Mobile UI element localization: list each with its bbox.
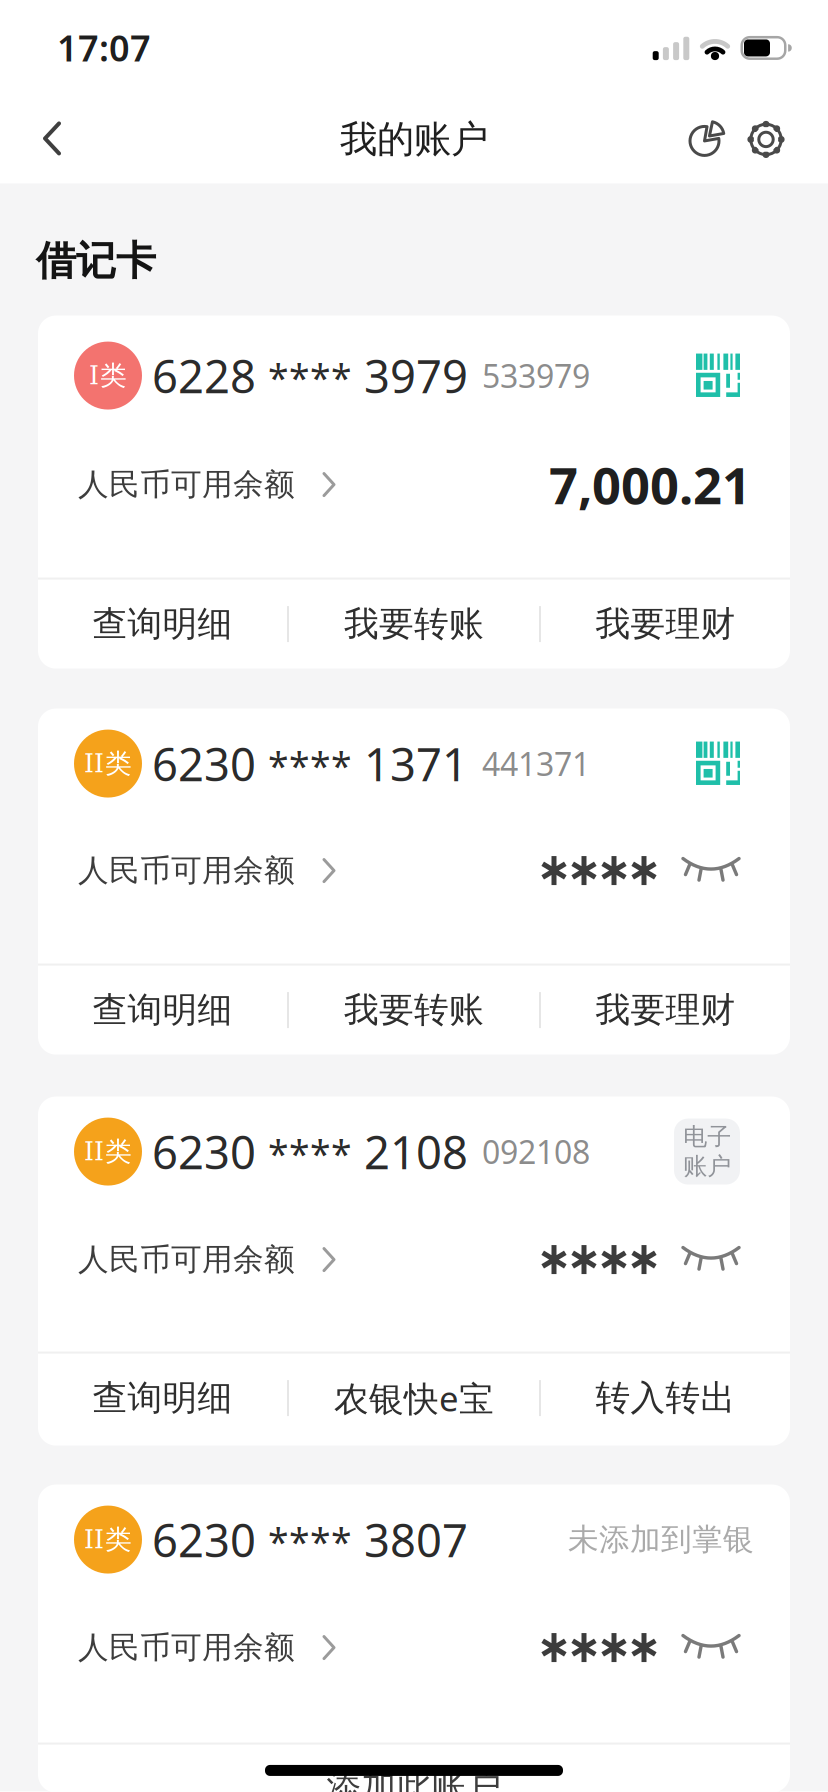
button[interactable]: 查询明细 — [38, 1354, 287, 1443]
staticText: 添加此账户 — [326, 1765, 501, 1792]
staticText: 092108 — [482, 1130, 590, 1173]
staticText: 借记卡 — [36, 236, 156, 285]
button[interactable]: Show payment code — [696, 742, 740, 786]
button[interactable]: 人民币可用余额 — [78, 1629, 337, 1666]
staticText: 未添加到掌银 — [568, 1521, 754, 1558]
staticText: 人民币可用余额 — [78, 852, 295, 889]
button[interactable]: 我要理财 — [541, 966, 790, 1055]
staticText: 6230 — [152, 1509, 256, 1570]
button[interactable]: Back — [22, 108, 82, 168]
button[interactable]: 我要理财 — [541, 580, 790, 669]
button[interactable]: 人民币可用余额 — [78, 852, 337, 889]
staticText: 6230 — [152, 1121, 256, 1182]
staticText: 转入转出 — [595, 1377, 735, 1419]
staticText: **** — [268, 1517, 352, 1566]
staticText: 查询明细 — [92, 989, 232, 1031]
staticText: 441371 — [482, 742, 590, 785]
button[interactable]: 查询明细 — [38, 580, 287, 669]
staticText: 3979 — [364, 345, 468, 406]
staticText: 6228 — [152, 345, 256, 406]
staticText: 我要理财 — [595, 603, 735, 645]
staticText: 人民币可用余额 — [78, 1629, 295, 1666]
staticText: 类 — [105, 1523, 132, 1556]
staticText: 533979 — [482, 354, 590, 397]
button[interactable]: 添加此账户 — [38, 1757, 790, 1792]
button[interactable]: 我要转账 — [289, 580, 539, 669]
button[interactable]: 农银快e宝 — [289, 1354, 539, 1443]
staticText: 2108 — [364, 1121, 468, 1182]
button[interactable]: Show balance — [682, 1633, 740, 1663]
staticText: 查询明细 — [92, 1377, 232, 1419]
staticText: 类 — [105, 747, 132, 780]
staticText: II — [84, 749, 104, 778]
staticText: I — [89, 361, 99, 390]
staticText: II — [84, 1525, 104, 1554]
staticText: **** — [268, 1129, 352, 1178]
staticText: 农银快e宝 — [334, 1375, 494, 1421]
staticText: 3807 — [364, 1509, 468, 1570]
button[interactable]: Assets analysis — [686, 119, 726, 159]
staticText: 人民币可用余额 — [78, 1241, 295, 1278]
staticText: 6230 — [152, 733, 256, 794]
staticText: 类 — [100, 359, 127, 392]
staticText: 电子 账户 — [683, 1122, 731, 1181]
staticText: 7,000.21 — [549, 451, 751, 518]
staticText: 我要转账 — [344, 989, 484, 1031]
staticText: 查询明细 — [92, 603, 232, 645]
staticText: 人民币可用余额 — [78, 466, 295, 503]
button[interactable]: 人民币可用余额 — [78, 466, 337, 503]
button[interactable]: 查询明细 — [38, 966, 287, 1055]
staticText: 我要理财 — [595, 989, 735, 1031]
staticText: 我要转账 — [344, 603, 484, 645]
button[interactable]: 我要转账 — [289, 966, 539, 1055]
button[interactable]: Show balance — [682, 856, 740, 886]
staticText: **** — [268, 741, 352, 790]
button[interactable]: Show payment code — [696, 354, 740, 398]
staticText: 1371 — [364, 733, 468, 794]
button[interactable]: Settings — [744, 117, 788, 161]
staticText: II — [84, 1137, 104, 1166]
button[interactable]: 人民币可用余额 — [78, 1241, 337, 1278]
staticText: 类 — [105, 1135, 132, 1168]
button[interactable]: 转入转出 — [541, 1354, 790, 1443]
button[interactable]: Show balance — [682, 1245, 740, 1275]
staticText: 17:07 — [57, 23, 151, 71]
staticText: **** — [268, 353, 352, 402]
staticText: 我的账户 — [340, 116, 488, 162]
